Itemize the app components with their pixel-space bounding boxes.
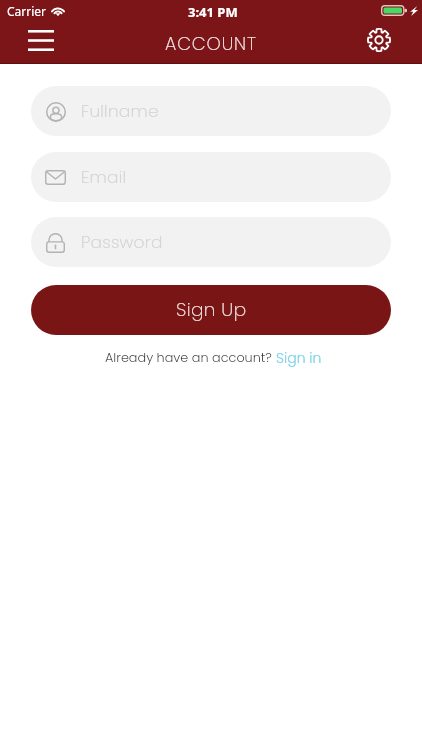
staticText: Carrier: [7, 3, 47, 19]
staticText: Email: [81, 165, 127, 189]
staticText: Sign Up: [176, 297, 247, 323]
staticText: 3:41 PM: [188, 3, 238, 21]
staticText: Password: [81, 230, 163, 254]
button[interactable]: Sign in: [276, 348, 322, 368]
button[interactable]: Sign Up: [31, 285, 391, 335]
staticText: Already have an account?: [105, 349, 276, 367]
staticText: ACCOUNT: [165, 31, 257, 56]
button[interactable]: Email: [31, 152, 391, 202]
button[interactable]: Password: [31, 217, 391, 267]
button[interactable]: Settings: [362, 24, 396, 56]
button[interactable]: Menu: [16, 24, 66, 56]
button[interactable]: Fullname: [31, 86, 391, 136]
staticText: Fullname: [81, 99, 159, 123]
